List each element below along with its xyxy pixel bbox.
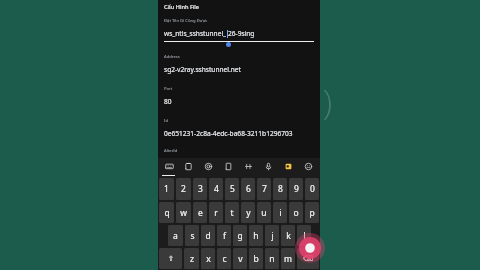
staticText: q (164, 207, 170, 219)
staticText: r (214, 207, 218, 219)
button[interactable]: Record (295, 233, 325, 263)
staticText: Id (164, 118, 168, 124)
button[interactable]: 9 (289, 178, 303, 200)
button[interactable]: t (225, 202, 239, 223)
staticText: 9 (294, 183, 299, 195)
staticText: Port (164, 86, 173, 92)
button[interactable]: f (217, 225, 231, 246)
button[interactable]: z (184, 248, 199, 269)
staticText: z (190, 253, 194, 265)
button[interactable]: 4 (209, 178, 223, 200)
button[interactable]: q (159, 202, 174, 223)
staticText: Đặt Tên Gì Cũng Được (164, 18, 208, 24)
staticText: 3 (198, 183, 203, 195)
staticText: 8 (278, 183, 283, 195)
button[interactable]: n (265, 248, 279, 269)
button[interactable]: Emoji (298, 158, 318, 175)
staticText: ⌫ (303, 255, 313, 263)
button[interactable]: r (209, 202, 223, 223)
staticText: a (173, 230, 178, 242)
staticText: Cấu Hình File (164, 3, 200, 11)
button[interactable]: e (193, 202, 207, 223)
staticText: 1 (164, 183, 169, 195)
staticText: 6 (246, 183, 251, 195)
staticText: b (253, 253, 259, 265)
button[interactable]: 2 (176, 178, 191, 200)
button[interactable]: 6 (241, 178, 255, 200)
button[interactable]: GIF (238, 158, 258, 175)
staticText: ws_ntls_sshstunnel_ (164, 29, 227, 38)
staticText: p (309, 207, 315, 219)
staticText: v (238, 253, 243, 265)
staticText: x (206, 253, 211, 265)
staticText: w (180, 207, 187, 219)
button[interactable]: j (265, 225, 279, 246)
button[interactable]: x (201, 248, 215, 269)
button[interactable]: k (281, 225, 295, 246)
button[interactable]: 8 (273, 178, 287, 200)
staticText: k (286, 230, 291, 242)
staticText: AlterId (164, 148, 178, 154)
staticText: sg2-v2ray.sshstunnel.net (164, 65, 241, 74)
button[interactable]: d (201, 225, 215, 246)
staticText: l (303, 230, 306, 242)
button[interactable]: 0 (305, 178, 319, 200)
button[interactable]: s (185, 225, 199, 246)
button[interactable]: a (168, 225, 183, 246)
staticText: y (246, 207, 251, 219)
button[interactable]: v (233, 248, 247, 269)
staticText: ⇧ (168, 255, 174, 263)
staticText: Address (164, 54, 180, 60)
staticText: o (293, 207, 299, 219)
button[interactable]: b (249, 248, 263, 269)
staticText: 5 (230, 183, 235, 195)
button[interactable]: m (281, 248, 295, 269)
button[interactable]: w (176, 202, 191, 223)
staticText: i (279, 207, 282, 219)
staticText: c (222, 253, 227, 265)
button[interactable]: ⇧ (159, 248, 182, 269)
staticText: 4 (214, 183, 219, 195)
staticText: 7 (262, 183, 267, 195)
staticText: n (269, 253, 275, 265)
staticText: 0e651231-2c8a-4edc-ba68-3211b1296703 (164, 129, 293, 138)
staticText: t (230, 207, 234, 219)
staticText: 80 (164, 97, 172, 106)
staticText: g (237, 230, 243, 242)
button[interactable]: ⌫ (297, 248, 319, 269)
button[interactable]: p (305, 202, 319, 223)
staticText: 0 (310, 183, 315, 195)
button[interactable]: Documents (218, 158, 238, 175)
button[interactable]: Stickers (198, 158, 218, 175)
button[interactable]: l (297, 225, 311, 246)
button[interactable]: Clipboard (179, 158, 198, 175)
staticText: 2 (181, 183, 186, 195)
staticText: u (261, 207, 267, 219)
button[interactable]: 5 (225, 178, 239, 200)
staticText: h (253, 230, 259, 242)
button[interactable]: g (233, 225, 247, 246)
button[interactable]: c (217, 248, 231, 269)
button[interactable]: 7 (257, 178, 271, 200)
staticText: f (223, 230, 226, 242)
button[interactable]: Voice input (258, 158, 278, 175)
button[interactable]: Translate (278, 158, 298, 175)
button[interactable]: y (241, 202, 255, 223)
staticText: e (198, 207, 203, 219)
staticText: j (271, 230, 274, 242)
button[interactable]: o (289, 202, 303, 223)
button[interactable]: 1 (159, 178, 174, 200)
button[interactable]: h (249, 225, 263, 246)
staticText: s (190, 230, 195, 242)
button[interactable]: i (273, 202, 287, 223)
staticText: 26-9sing (228, 29, 255, 38)
button[interactable]: 3 (193, 178, 207, 200)
staticText: m (284, 253, 292, 265)
button[interactable]: Keyboard (160, 158, 179, 175)
staticText: d (205, 230, 211, 242)
button[interactable]: u (257, 202, 271, 223)
